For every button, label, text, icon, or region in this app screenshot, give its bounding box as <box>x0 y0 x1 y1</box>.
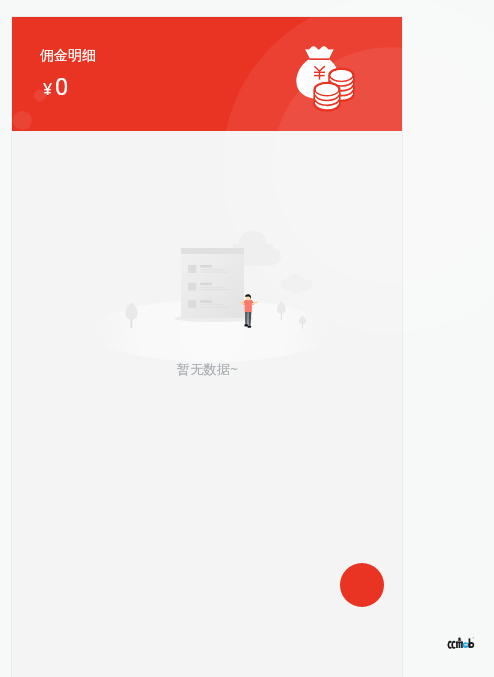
staticText: 0 <box>55 70 69 101</box>
staticText: ¥ <box>43 78 53 100</box>
button[interactable]: Add <box>340 563 384 607</box>
staticText: 暂无数据~ <box>177 360 238 378</box>
staticText: 佣金明细 <box>40 47 96 65</box>
